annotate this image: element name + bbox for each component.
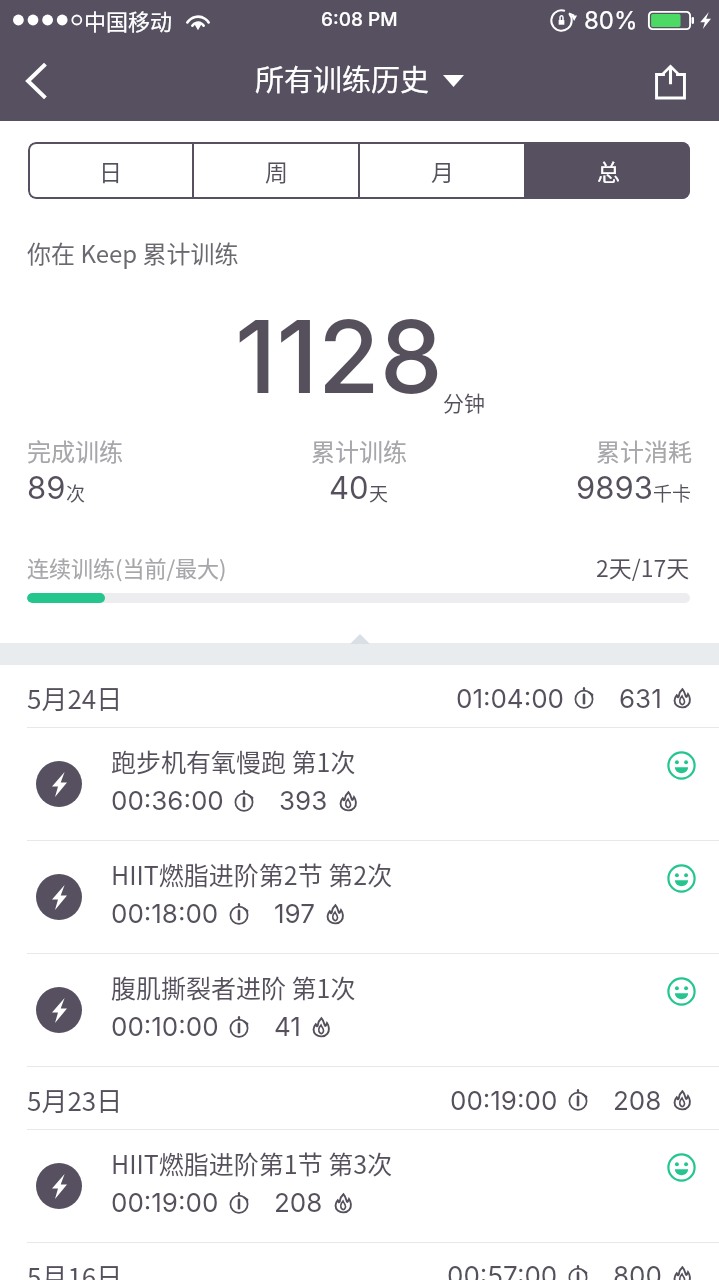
staticText: 00:19:00 — [450, 1085, 558, 1116]
staticText: 累计训练 — [311, 433, 407, 468]
staticText: 累计消耗 — [596, 433, 692, 468]
button[interactable]: Back — [0, 45, 72, 117]
button[interactable]: 月 — [360, 142, 524, 199]
staticText: 00:10:00 — [111, 1011, 219, 1042]
staticText: 分钟 — [443, 387, 485, 417]
staticText: 你在 Keep 累计训练 — [27, 235, 239, 270]
button[interactable]: 周 — [194, 142, 358, 199]
button[interactable]: 5月16日 — [0, 1243, 719, 1280]
staticText: 9893 — [576, 469, 653, 507]
button[interactable]: HIIT燃脂进阶第2节 第2次 — [0, 841, 719, 954]
staticText: 208 — [613, 1085, 662, 1116]
button[interactable]: 5月24日 — [0, 665, 719, 728]
staticText: 中国移动 — [84, 4, 173, 36]
staticText: 00:18:00 — [111, 898, 219, 929]
staticText: 800 — [613, 1260, 662, 1280]
staticText: 197 — [274, 898, 315, 929]
staticText: 完成训练 — [27, 433, 123, 468]
staticText: 跑步机有氧慢跑 第1次 — [111, 743, 356, 779]
staticText: 5月16日 — [27, 1257, 123, 1280]
staticText: 总 — [597, 154, 620, 187]
staticText: 89 — [27, 469, 66, 507]
staticText: 2天/17天 — [596, 550, 690, 583]
staticText: 01:04:00 — [456, 683, 564, 714]
staticText: 次 — [66, 479, 86, 507]
staticText: 月 — [431, 154, 454, 187]
staticText: 腹肌撕裂者进阶 第1次 — [111, 969, 356, 1005]
staticText: 5月24日 — [27, 679, 123, 717]
staticText: 208 — [274, 1187, 323, 1218]
staticText: 连续训练(当前/最大) — [27, 551, 227, 583]
button[interactable]: 日 — [28, 142, 192, 199]
staticText: 天 — [369, 479, 389, 507]
staticText: 393 — [279, 785, 328, 816]
staticText: 00:19:00 — [111, 1187, 219, 1218]
button[interactable]: 所有训练历史 — [249, 57, 470, 99]
staticText: 80% — [584, 6, 638, 35]
staticText: 41 — [274, 1011, 301, 1042]
staticText: 5月23日 — [27, 1081, 123, 1119]
staticText: HIIT燃脂进阶第1节 第3次 — [111, 1145, 393, 1181]
staticText: 所有训练历史 — [255, 57, 430, 99]
button[interactable]: 总 — [526, 142, 690, 199]
staticText: 1128 — [235, 296, 443, 417]
staticText: 40 — [329, 469, 369, 507]
staticText: 周 — [265, 154, 288, 187]
button[interactable]: 跑步机有氧慢跑 第1次 — [0, 728, 719, 841]
button[interactable]: Share — [640, 51, 700, 111]
button[interactable]: HIIT燃脂进阶第1节 第3次 — [0, 1130, 719, 1243]
staticText: 00:36:00 — [111, 785, 224, 816]
staticText: 日 — [99, 154, 122, 187]
staticText: 6:08 PM — [321, 8, 398, 31]
button[interactable]: 腹肌撕裂者进阶 第1次 — [0, 954, 719, 1067]
staticText: HIIT燃脂进阶第2节 第2次 — [111, 856, 393, 892]
staticText: 00:57:00 — [447, 1260, 558, 1280]
button[interactable]: 5月23日 — [0, 1067, 719, 1130]
staticText: 千卡 — [653, 479, 692, 507]
staticText: 631 — [619, 683, 662, 714]
